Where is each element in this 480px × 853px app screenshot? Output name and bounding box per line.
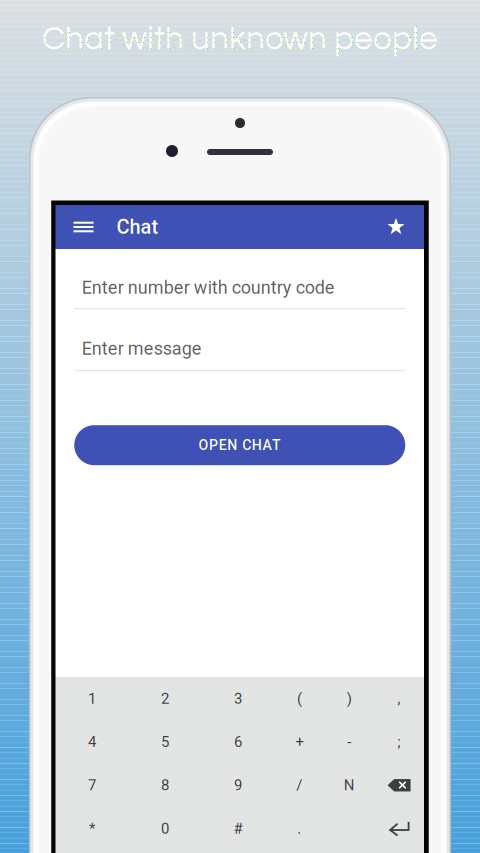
staticText: . <box>297 820 301 837</box>
button[interactable]: ) <box>324 677 374 720</box>
button[interactable]: 1 <box>55 677 128 720</box>
button[interactable]: Enter <box>374 807 424 850</box>
button[interactable]: ( <box>274 677 324 720</box>
staticText: Chat with unknown people <box>42 22 438 56</box>
staticText: 3 <box>234 690 242 707</box>
button[interactable]: 2 <box>128 677 201 720</box>
staticText: 7 <box>88 776 96 794</box>
staticText: 0 <box>161 820 169 837</box>
staticText: 8 <box>161 776 169 794</box>
staticText: # <box>233 820 242 837</box>
staticText: 6 <box>234 733 242 751</box>
staticText: , <box>398 690 401 707</box>
staticText: N <box>344 776 355 794</box>
button[interactable]: 4 <box>55 720 128 764</box>
button[interactable]: OPEN CHAT <box>74 425 405 465</box>
staticText: * <box>89 820 95 837</box>
button[interactable]: N <box>324 764 374 807</box>
button[interactable]: ; <box>374 720 424 764</box>
staticText: + <box>295 733 303 751</box>
button[interactable]: * <box>55 807 128 850</box>
button[interactable]: Enter message <box>74 309 405 371</box>
button[interactable]: 9 <box>201 764 274 807</box>
staticText: ) <box>347 690 352 707</box>
button[interactable]: 0 <box>128 807 201 850</box>
button[interactable]: Favourite <box>373 205 419 249</box>
button[interactable]: Open navigation menu <box>60 205 106 249</box>
button[interactable]: # <box>201 807 274 850</box>
staticText: 9 <box>234 776 242 794</box>
button[interactable]: 8 <box>128 764 201 807</box>
staticText: 4 <box>88 733 96 751</box>
button[interactable]: 3 <box>201 677 274 720</box>
staticText: Enter number with country code <box>82 277 335 298</box>
button[interactable]: / <box>274 764 324 807</box>
button[interactable]: 6 <box>201 720 274 764</box>
staticText: 2 <box>161 690 169 707</box>
staticText: ( <box>297 690 302 707</box>
staticText: OPEN CHAT <box>199 437 281 453</box>
staticText: Enter message <box>82 338 202 359</box>
staticText: 1 <box>88 690 96 707</box>
button[interactable]: Backspace <box>374 764 424 807</box>
staticText: - <box>347 733 351 751</box>
staticText: ; <box>398 733 401 751</box>
button[interactable]: , <box>374 677 424 720</box>
staticText: / <box>296 776 302 794</box>
staticText: Chat <box>116 215 158 239</box>
button[interactable]: Enter number with country code <box>74 249 405 309</box>
button[interactable]: - <box>324 720 374 764</box>
button[interactable]: 5 <box>128 720 201 764</box>
staticText: 5 <box>161 733 169 751</box>
button[interactable]: 7 <box>55 764 128 807</box>
button[interactable]: + <box>274 720 324 764</box>
button[interactable]: . <box>274 807 324 850</box>
